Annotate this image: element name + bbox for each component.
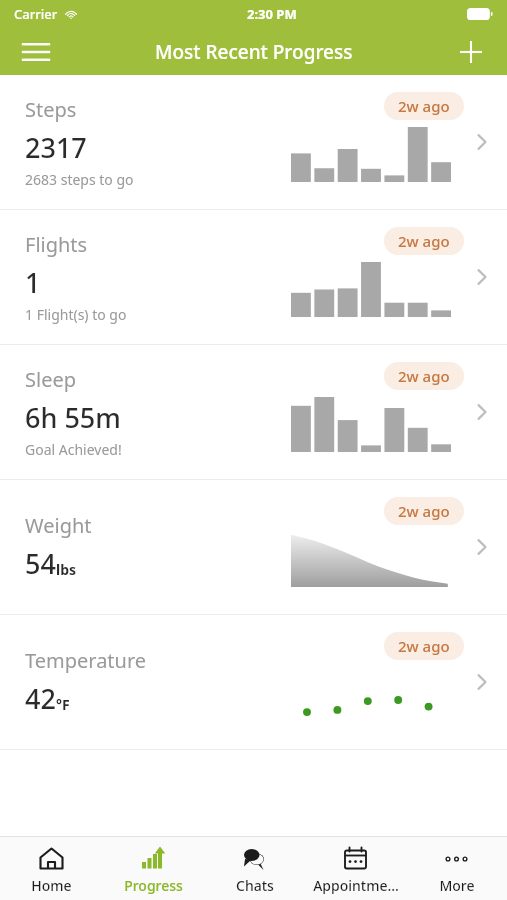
- staticText: 2683 steps to go: [25, 170, 134, 189]
- staticText: 2w ago: [398, 96, 450, 116]
- staticText: Goal Achieved!: [25, 440, 122, 459]
- staticText: 54: [25, 545, 56, 582]
- staticText: 1: [25, 264, 41, 301]
- button[interactable]: Flights: [0, 210, 507, 344]
- staticText: 1 Flight(s) to go: [25, 305, 127, 324]
- staticText: 2w ago: [398, 366, 450, 386]
- staticText: Home: [31, 876, 72, 895]
- staticText: Chats: [236, 876, 274, 895]
- staticText: lbs: [56, 560, 77, 579]
- staticText: Sleep: [25, 366, 76, 393]
- staticText: Progress: [124, 876, 183, 895]
- button[interactable]: Steps: [0, 75, 507, 209]
- staticText: More: [439, 876, 475, 895]
- staticText: 6h 55m: [25, 399, 121, 436]
- staticText: 2w ago: [398, 231, 450, 251]
- button[interactable]: Menu: [14, 30, 58, 74]
- staticText: 2317: [25, 129, 87, 166]
- button[interactable]: Add: [449, 30, 493, 74]
- staticText: Carrier: [14, 5, 58, 23]
- staticText: Appointme…: [313, 876, 399, 895]
- button[interactable]: Temperature: [0, 615, 507, 749]
- staticText: Flights: [25, 231, 88, 258]
- staticText: Steps: [25, 96, 77, 123]
- staticText: Temperature: [25, 647, 147, 674]
- button[interactable]: Chats: [204, 837, 305, 900]
- staticText: 2:30 PM: [247, 5, 297, 23]
- staticText: °F: [56, 695, 70, 714]
- staticText: 2w ago: [398, 501, 450, 521]
- staticText: Weight: [25, 512, 92, 539]
- button[interactable]: Weight: [0, 480, 507, 614]
- button[interactable]: Progress: [102, 837, 204, 900]
- button[interactable]: Appointme…: [305, 837, 406, 900]
- staticText: 42: [25, 680, 56, 717]
- staticText: 2w ago: [398, 636, 450, 656]
- staticText: Most Recent Progress: [155, 39, 353, 65]
- button[interactable]: Sleep: [0, 345, 507, 479]
- button[interactable]: Home: [0, 837, 102, 900]
- button[interactable]: More: [406, 837, 507, 900]
